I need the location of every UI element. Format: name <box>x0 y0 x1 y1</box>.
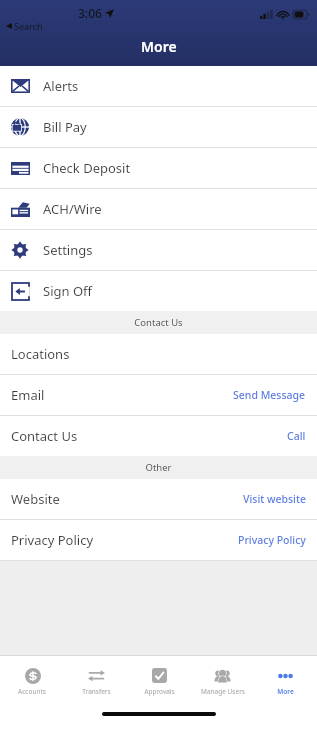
button[interactable]: Settings <box>0 230 317 270</box>
staticText: Check Deposit <box>43 159 131 177</box>
button[interactable]: Accounts <box>0 663 64 696</box>
button[interactable]: Bill Pay <box>0 107 317 147</box>
staticText: Transfers <box>82 687 111 696</box>
staticText: 3:06 <box>78 5 102 21</box>
button[interactable]: Contact Us <box>0 416 317 456</box>
button[interactable]: Manage Users <box>191 663 254 696</box>
staticText: Other <box>145 461 172 474</box>
staticText: Call <box>287 429 306 443</box>
button[interactable]: More <box>254 663 317 696</box>
button[interactable]: ACH/Wire <box>0 189 317 229</box>
staticText: Search <box>14 20 43 32</box>
button[interactable]: Locations <box>0 334 317 374</box>
button[interactable]: Approvals <box>128 663 191 696</box>
staticText: Send Message <box>233 388 306 402</box>
staticText: Approvals <box>144 687 175 696</box>
button[interactable]: Email <box>0 375 317 415</box>
staticText: ACH/Wire <box>43 200 102 218</box>
staticText: Alerts <box>43 77 79 95</box>
staticText: Privacy Policy <box>238 533 306 547</box>
staticText: More <box>141 37 177 56</box>
staticText: Contact Us <box>134 316 183 329</box>
staticText: Contact Us <box>11 427 78 445</box>
staticText: Sign Off <box>43 282 92 300</box>
staticText: Email <box>11 386 45 404</box>
button[interactable]: Transfers <box>64 663 128 696</box>
staticText: Website <box>11 490 60 508</box>
button[interactable]: Sign Off <box>0 271 317 311</box>
staticText: Locations <box>11 345 70 363</box>
staticText: Bill Pay <box>43 118 87 136</box>
staticText: Manage Users <box>201 687 245 696</box>
button[interactable]: Alerts <box>0 66 317 106</box>
button[interactable]: Check Deposit <box>0 148 317 188</box>
staticText: Visit website <box>243 492 306 506</box>
staticText: Settings <box>43 241 93 259</box>
staticText: Accounts <box>18 687 46 696</box>
staticText: Privacy Policy <box>11 531 94 549</box>
button[interactable]: Privacy Policy <box>0 520 317 560</box>
staticText: More <box>277 687 294 696</box>
button[interactable]: Website <box>0 479 317 519</box>
